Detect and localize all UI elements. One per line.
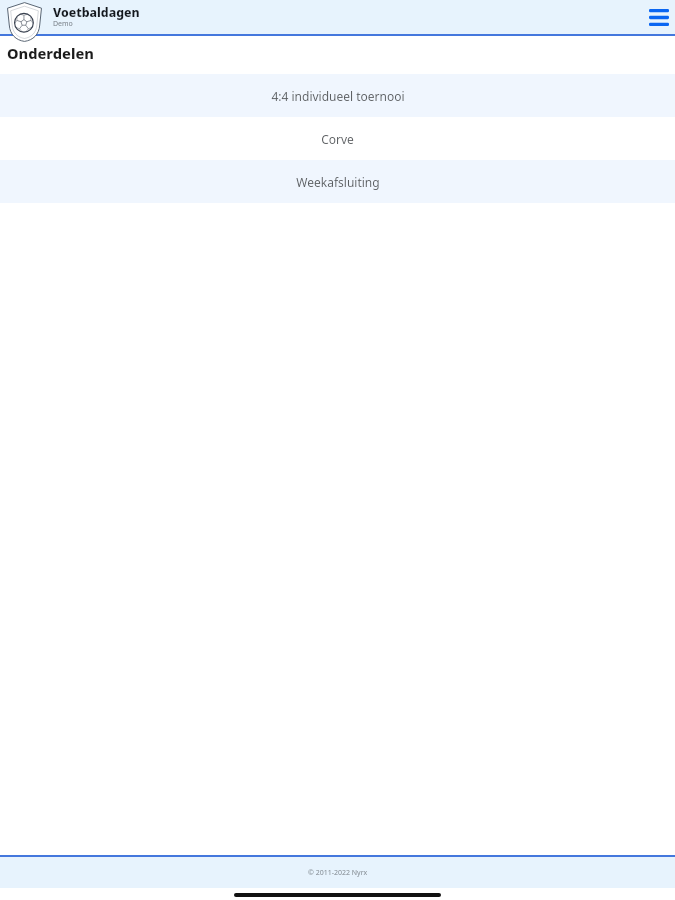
staticText: Weekafsluiting	[296, 174, 380, 190]
button[interactable]: 4:4 individueel toernooi	[0, 74, 675, 117]
button[interactable]: Weekafsluiting	[0, 160, 675, 203]
staticText: Corve	[321, 131, 354, 147]
button[interactable]: Corve	[0, 117, 675, 160]
staticText: Voetbaldagen	[53, 4, 140, 21]
staticText: © 2011-2022 Nyrx	[308, 868, 368, 878]
staticText: Onderdelen	[7, 43, 94, 63]
staticText: Demo	[53, 19, 73, 29]
staticText: 4:4 individueel toernooi	[271, 88, 405, 104]
button[interactable]: Open navigation menu	[643, 1, 675, 33]
button[interactable]: Voetbaldagen	[45, 0, 152, 34]
button[interactable]: Voetbaldagen home	[7, 2, 42, 42]
